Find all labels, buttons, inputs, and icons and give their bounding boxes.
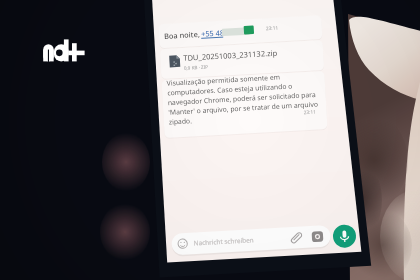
button[interactable]: Photo of WhatsApp chat on a phone [0,0,420,280]
